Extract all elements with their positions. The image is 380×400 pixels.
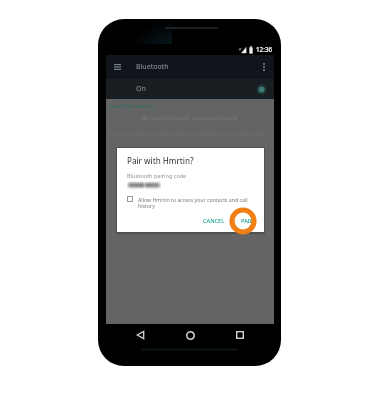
staticText: No nearby Bluetooth devices were found. — [111, 115, 269, 122]
button[interactable]: Open navigation menu — [106, 55, 128, 79]
button[interactable]: PAIR — [239, 217, 256, 225]
button[interactable]: More options — [254, 55, 274, 79]
staticText: Bluetooth pairing code — [127, 172, 187, 179]
staticText: Bluetooth — [136, 62, 169, 72]
staticText: Allow Hmrtin to access your contacts and… — [138, 196, 256, 210]
staticText: Available devices — [110, 102, 155, 109]
button[interactable]: Home — [178, 324, 202, 346]
staticText: Pair with Hmrtin? — [127, 155, 194, 166]
staticText: PAIR — [241, 217, 254, 225]
button[interactable]: Recent apps — [228, 324, 252, 346]
staticText: On — [136, 84, 146, 94]
button[interactable]: Back — [128, 324, 152, 346]
button[interactable]: CANCEL — [201, 217, 227, 225]
button[interactable]: On — [106, 79, 274, 99]
staticText: 12:36 — [256, 45, 273, 54]
staticText: CANCEL — [203, 217, 225, 225]
